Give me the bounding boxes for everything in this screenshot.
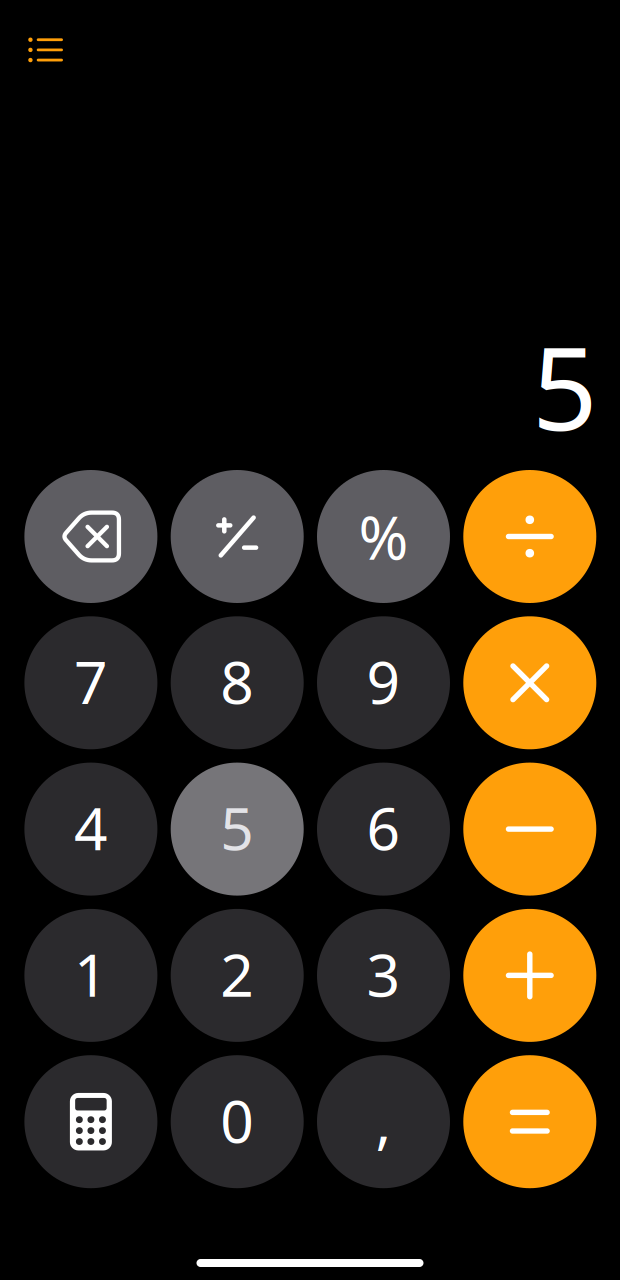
button[interactable]: Plus or minus	[171, 470, 304, 603]
staticText: 6	[366, 789, 400, 866]
button[interactable]: Multiply	[463, 616, 596, 749]
button[interactable]: 1	[24, 909, 157, 1042]
button[interactable]: 2	[171, 909, 304, 1042]
staticText: 5	[220, 789, 254, 866]
staticText: 0	[220, 1081, 254, 1159]
button[interactable]: Decimal separator	[317, 1055, 450, 1188]
button[interactable]: 0	[171, 1055, 304, 1188]
staticText: %	[358, 497, 408, 576]
staticText: 7	[74, 642, 108, 720]
button[interactable]: Calculator	[24, 1055, 157, 1188]
staticText: ,	[375, 1081, 391, 1159]
button[interactable]: 8	[171, 616, 304, 749]
button[interactable]: 9	[317, 616, 450, 749]
button[interactable]: 6	[317, 763, 450, 896]
staticText: 3	[366, 935, 400, 1013]
staticText: 2	[220, 935, 254, 1013]
staticText: 8	[220, 642, 254, 720]
staticText: 1	[74, 935, 108, 1013]
staticText: 5	[532, 310, 598, 462]
button[interactable]: History	[14, 22, 78, 78]
button[interactable]: Plus	[463, 909, 596, 1042]
staticText: 9	[366, 642, 400, 720]
button[interactable]: Minus	[463, 763, 596, 896]
button[interactable]: 7	[24, 616, 157, 749]
button[interactable]: Divide	[463, 470, 596, 603]
button[interactable]: Equals	[463, 1055, 596, 1188]
staticText: 4	[74, 789, 108, 866]
button[interactable]: Percent	[317, 470, 450, 603]
button[interactable]: 3	[317, 909, 450, 1042]
button[interactable]: 4	[24, 763, 157, 896]
button[interactable]: 5	[171, 763, 304, 896]
button[interactable]: Delete	[24, 470, 157, 603]
